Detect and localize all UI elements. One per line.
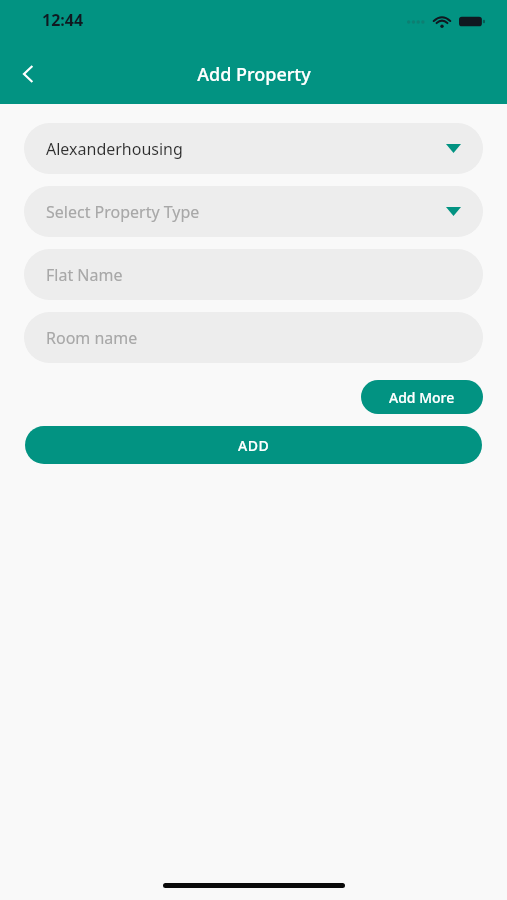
button[interactable]: Flat Name [24,249,483,300]
button[interactable]: Alexanderhousing [24,123,483,174]
staticText: ADD [238,436,270,455]
button[interactable]: ADD [25,426,482,464]
staticText: Add Property [197,62,311,87]
staticText: Alexanderhousing [46,138,183,160]
staticText: Room name [46,327,138,349]
staticText: Add More [389,388,455,407]
button[interactable]: Select Property Type [24,186,483,237]
button[interactable]: Room name [24,312,483,363]
button[interactable]: Back [6,52,50,96]
staticText: Flat Name [46,264,123,286]
staticText: 12:44 [42,9,84,31]
button[interactable]: Add More [361,380,483,414]
staticText: Select Property Type [46,201,200,223]
